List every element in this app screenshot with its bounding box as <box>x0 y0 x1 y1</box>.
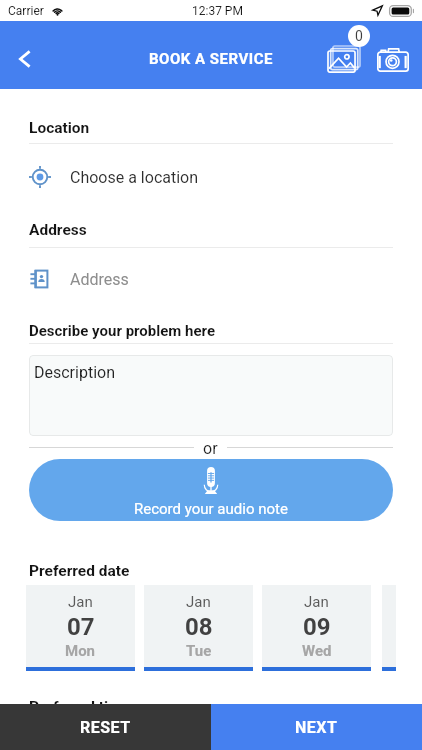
button[interactable]: Jan <box>26 585 135 671</box>
button[interactable]: Back <box>2 28 48 74</box>
staticText: Address <box>70 270 129 289</box>
button[interactable]: Record your audio note <box>29 459 393 521</box>
button[interactable]: Jan <box>382 585 396 671</box>
staticText: or <box>203 439 218 456</box>
staticText: Preferred date <box>29 562 130 580</box>
staticText: 08 <box>185 613 213 641</box>
button[interactable]: RESET <box>0 704 211 750</box>
button[interactable]: Jan <box>144 585 253 671</box>
button[interactable]: Jan <box>262 585 371 671</box>
button[interactable]: NEXT <box>211 704 422 750</box>
staticText: Mon <box>65 642 96 660</box>
staticText: Address <box>29 221 87 239</box>
staticText: Jan <box>186 593 211 611</box>
staticText: Jan <box>68 593 93 611</box>
staticText: Choose a location <box>70 168 199 187</box>
staticText: BOOK A SERVICE <box>149 50 273 68</box>
staticText: Wed <box>302 642 332 660</box>
staticText: Location <box>29 119 90 137</box>
staticText: 12:37 PM <box>192 4 243 18</box>
staticText: Record your audio note <box>134 500 288 518</box>
staticText: Jan <box>304 593 329 611</box>
staticText: 0 <box>355 28 363 44</box>
staticText: 07 <box>67 613 95 641</box>
staticText: Description <box>34 363 115 382</box>
staticText: RESET <box>80 718 131 737</box>
button[interactable]: Gallery <box>320 21 372 73</box>
staticText: Describe your problem here <box>29 322 215 340</box>
staticText: Tue <box>186 642 212 660</box>
staticText: NEXT <box>295 718 338 737</box>
button[interactable]: Description <box>29 355 393 436</box>
button[interactable]: Address <box>29 267 393 291</box>
staticText: 09 <box>303 613 331 641</box>
button[interactable]: Camera <box>368 25 414 71</box>
staticText: Carrier <box>8 4 44 18</box>
button[interactable]: Choose a location <box>29 165 393 189</box>
staticText: Preferred time <box>29 698 130 716</box>
